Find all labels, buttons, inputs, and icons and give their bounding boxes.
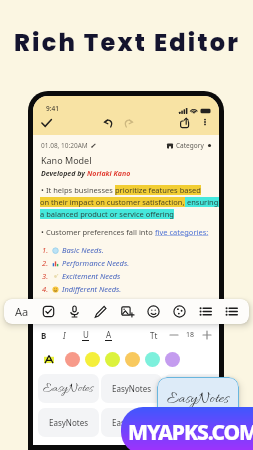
staticText: Basic Needs. — [62, 245, 104, 255]
staticText: EasyNotes — [43, 381, 94, 397]
button[interactable]: Numbered list — [225, 305, 238, 318]
staticText: Performance Needs. — [62, 258, 130, 268]
button[interactable]: Share — [180, 118, 190, 128]
staticText: prioritize features based — [115, 185, 201, 195]
button[interactable]: Colour 1 — [65, 352, 80, 367]
button[interactable]: MYAPKS.COM — [121, 407, 253, 450]
staticText: I — [63, 330, 66, 341]
button[interactable]: B — [41, 330, 47, 341]
button[interactable]: Colour 4 — [125, 352, 140, 367]
staticText: EasyNotes — [167, 389, 229, 409]
staticText: • — [41, 227, 44, 237]
staticText: Customer preferences fall into — [46, 227, 155, 237]
staticText: EasyNotes — [112, 383, 151, 394]
staticText: EasyNotes — [175, 383, 214, 394]
button[interactable]: EasyNotes — [101, 408, 162, 437]
staticText: It helps businesses — [46, 185, 115, 195]
button[interactable]: Colour 5 — [145, 352, 160, 367]
button[interactable]: Colour 6 — [165, 352, 180, 367]
staticText: EasyNotes — [112, 417, 151, 428]
staticText: Kano Model — [41, 154, 92, 166]
staticText: 1. — [42, 245, 49, 255]
staticText: 18 — [186, 330, 195, 340]
staticText: U — [83, 329, 89, 340]
button[interactable]: Undo — [103, 118, 114, 129]
button[interactable]: Bulleted list — [199, 305, 212, 318]
staticText: 2. — [42, 258, 49, 268]
button[interactable]: EasyNotes — [157, 377, 239, 420]
button[interactable]: Emoji — [147, 305, 160, 318]
button[interactable]: Text highlight — [44, 354, 54, 364]
staticText: five categories: — [155, 227, 209, 237]
button[interactable]: Tt — [150, 330, 158, 341]
button[interactable]: Insert image — [121, 305, 134, 318]
button[interactable]: EasyNotes — [38, 408, 99, 437]
staticText: 9:41 — [46, 104, 59, 113]
button[interactable]: Increase font size — [203, 331, 211, 339]
staticText: EasyNotes — [175, 417, 214, 428]
button[interactable]: Colour 2 — [85, 352, 100, 367]
staticText: Rich Text Editor — [14, 26, 241, 60]
staticText: Category — [176, 141, 204, 150]
button[interactable]: U — [82, 329, 89, 341]
staticText: B — [41, 330, 47, 341]
button[interactable]: EasyNotes — [164, 374, 219, 403]
staticText: MYAPKS.COM — [128, 418, 253, 447]
staticText: • — [41, 185, 44, 195]
button[interactable]: EasyNotes — [164, 408, 219, 437]
staticText: Excitement Needs — [62, 271, 121, 281]
button[interactable]: Colour 3 — [105, 352, 120, 367]
staticText: Indifferent Needs. — [62, 284, 122, 294]
staticText: Developed by — [41, 169, 87, 179]
button[interactable]: Draw — [94, 305, 107, 318]
button[interactable]: Voice note — [68, 305, 81, 318]
staticText: 4. — [42, 284, 49, 294]
staticText: on their impact on customer satisfaction… — [40, 197, 185, 207]
staticText: Aa — [15, 304, 29, 319]
button[interactable]: EasyNotes — [38, 374, 99, 403]
button[interactable]: A — [105, 329, 112, 341]
button[interactable]: Decrease font size — [170, 331, 178, 339]
button[interactable]: Redo — [123, 118, 134, 129]
button[interactable]: Aa — [15, 304, 29, 319]
staticText: ensuring — [185, 197, 219, 207]
button[interactable]: I — [63, 330, 66, 341]
button[interactable]: Done — [41, 118, 52, 129]
staticText: Noriaki Kano — [87, 169, 131, 179]
button[interactable]: Checklist — [42, 305, 55, 318]
button[interactable]: Colour palette — [173, 305, 186, 318]
staticText: EasyNotes — [49, 417, 88, 428]
staticText: A — [106, 329, 112, 340]
staticText: a balanced product or service offering — [40, 209, 174, 219]
staticText: 01.08, 10:20AM — [41, 141, 88, 150]
button[interactable]: EasyNotes — [101, 374, 162, 403]
button[interactable]: More options — [201, 118, 209, 126]
staticText: Tt — [150, 330, 158, 341]
staticText: 3. — [42, 271, 49, 281]
